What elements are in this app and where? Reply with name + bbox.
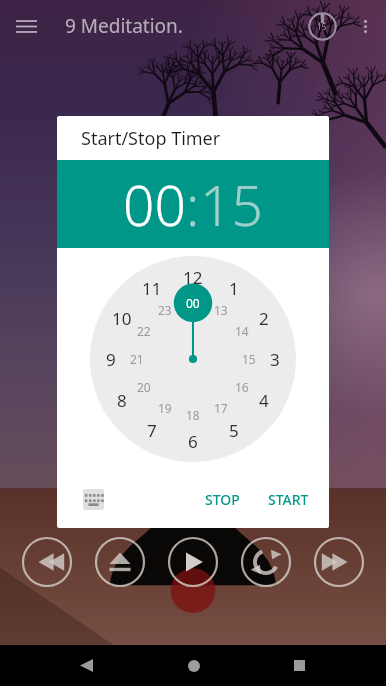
staticText: 5 — [229, 419, 239, 442]
button[interactable]: 4 — [259, 389, 269, 412]
button[interactable]: Recent apps — [279, 645, 320, 686]
button[interactable]: 7 — [147, 419, 157, 442]
staticText: 7 — [147, 419, 157, 442]
staticText: 2 — [259, 307, 269, 330]
button[interactable]: 10 — [112, 307, 132, 330]
staticText: 13 — [214, 302, 228, 318]
button[interactable]: 1 — [229, 277, 239, 300]
button[interactable]: STOP — [195, 482, 250, 517]
button[interactable]: Timer 15 minutes — [300, 4, 344, 48]
button[interactable]: 15 — [242, 351, 256, 367]
staticText: 12 — [183, 266, 203, 289]
staticText: 14 — [235, 323, 249, 339]
staticText: 00 — [186, 295, 200, 311]
staticText: 20 — [137, 379, 151, 395]
staticText: 23 — [158, 302, 172, 318]
button[interactable]: Open navigation menu — [0, 0, 52, 52]
button[interactable]: 19 — [158, 400, 172, 416]
button[interactable]: Switch to keyboard input — [75, 481, 111, 517]
staticText: 6 — [188, 430, 198, 453]
staticText: 9 Meditation. — [65, 13, 183, 39]
button[interactable]: More options — [344, 5, 386, 47]
button[interactable]: Eject — [94, 536, 146, 588]
staticText: 15 — [317, 21, 327, 32]
button[interactable]: 18 — [186, 407, 200, 423]
staticText: 4 — [259, 389, 269, 412]
button[interactable]: 23 — [158, 302, 172, 318]
button[interactable]: Home — [173, 645, 214, 686]
button[interactable]: 6 — [188, 430, 198, 453]
button[interactable]: 15 — [200, 167, 263, 242]
button[interactable]: Repeat — [240, 536, 292, 588]
button[interactable]: 14 — [235, 323, 249, 339]
button[interactable]: 13 — [214, 302, 228, 318]
staticText: 1 — [229, 277, 239, 300]
staticText: START — [268, 490, 309, 509]
button[interactable]: 9 — [106, 348, 116, 371]
button[interactable]: 17 — [214, 400, 228, 416]
staticText: 3 — [270, 348, 280, 371]
staticText: 15 — [200, 167, 263, 242]
button[interactable]: 22 — [137, 323, 151, 339]
staticText: 17 — [214, 400, 228, 416]
staticText: : — [186, 167, 200, 242]
button[interactable]: Rewind — [21, 536, 73, 588]
button[interactable]: 20 — [137, 379, 151, 395]
staticText: 11 — [142, 277, 162, 300]
button[interactable]: 00 — [186, 295, 200, 311]
staticText: 8 — [117, 389, 127, 412]
staticText: 9 — [106, 348, 116, 371]
staticText: 19 — [158, 400, 172, 416]
button[interactable]: 16 — [235, 379, 249, 395]
button[interactable]: Back — [66, 645, 107, 686]
staticText: 18 — [186, 407, 200, 423]
button[interactable]: 21 — [130, 351, 144, 367]
button[interactable]: 11 — [142, 277, 162, 300]
staticText: STOP — [205, 490, 240, 509]
staticText: 16 — [235, 379, 249, 395]
staticText: 00 — [123, 167, 186, 242]
button[interactable]: Play — [167, 536, 219, 588]
button[interactable]: 8 — [117, 389, 127, 412]
button[interactable]: 12 — [183, 266, 203, 289]
button[interactable]: 2 — [259, 307, 269, 330]
button[interactable]: START — [258, 482, 319, 517]
staticText: 22 — [137, 323, 151, 339]
button[interactable]: 5 — [229, 419, 239, 442]
staticText: 15 — [242, 351, 256, 367]
staticText: 21 — [130, 351, 144, 367]
button[interactable]: 00 — [123, 167, 186, 242]
staticText: Start/Stop Timer — [81, 126, 221, 151]
button[interactable]: Fast forward — [313, 536, 365, 588]
staticText: 10 — [112, 307, 132, 330]
button[interactable]: 3 — [270, 348, 280, 371]
